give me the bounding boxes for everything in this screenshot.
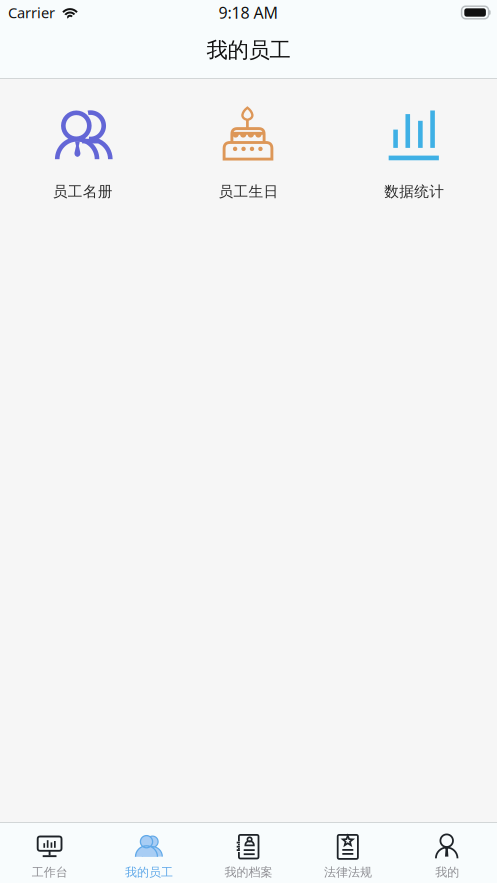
staticText: 数据统计 <box>384 182 444 200</box>
button[interactable]: 我的 <box>398 823 497 883</box>
staticText: 员工名册 <box>53 182 113 200</box>
staticText: 法律法规 <box>324 865 372 880</box>
staticText: 我的档案 <box>224 865 272 880</box>
button[interactable]: 数据统计 <box>331 79 497 204</box>
button[interactable]: 员工生日 <box>166 79 331 204</box>
staticText: 我的 <box>435 865 459 880</box>
staticText: 9:18 AM <box>218 2 278 23</box>
button[interactable]: 法律法规 <box>298 823 398 883</box>
staticText: 工作台 <box>32 865 68 880</box>
button[interactable]: 我的档案 <box>199 823 298 883</box>
button[interactable]: 员工名册 <box>0 79 166 204</box>
staticText: 我的员工 <box>206 37 290 63</box>
button[interactable]: 我的员工 <box>99 823 199 883</box>
staticText: 员工生日 <box>218 182 278 200</box>
staticText: Carrier <box>8 3 55 22</box>
button[interactable]: 工作台 <box>0 823 99 883</box>
staticText: 我的员工 <box>125 865 173 880</box>
